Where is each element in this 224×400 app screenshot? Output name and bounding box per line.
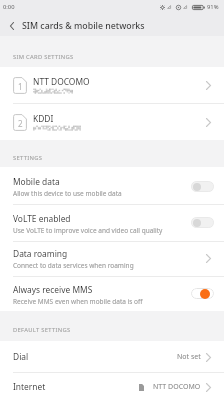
button[interactable]: Internet (0, 373, 224, 400)
staticText: 2 (18, 118, 23, 129)
staticText: Receive MMS even when mobile data is off (13, 297, 143, 306)
button[interactable]: Mobile data (0, 167, 224, 204)
staticText: Data roaming (13, 248, 68, 259)
button[interactable]: 1 (0, 67, 224, 103)
staticText: Mobile data (13, 176, 60, 187)
button[interactable]: Dial (0, 341, 224, 372)
staticText: VoLTE enabled (13, 213, 71, 224)
staticText: SIM CARD SETTINGS (13, 53, 74, 61)
staticText: Use VoLTE to improve voice and video cal… (13, 226, 163, 235)
staticText: DEFAULT SETTINGS (13, 326, 71, 334)
button[interactable]: Always receive MMS (0, 277, 224, 311)
button[interactable]: Switch on (191, 288, 214, 299)
staticText: Internet (13, 381, 46, 392)
staticText: SETTINGS (13, 154, 43, 162)
staticText: NTT DOCOMO (153, 382, 201, 392)
button[interactable]: VoLTE enabled (0, 205, 224, 241)
button[interactable]: Switch off (191, 181, 214, 192)
staticText: Not set (177, 352, 201, 362)
staticText: NTT DOCOMO (33, 76, 90, 87)
staticText: 1 (18, 81, 23, 92)
staticText: Always receive MMS (13, 284, 93, 295)
staticText: SIM cards & mobile networks (22, 20, 145, 32)
staticText: Dial (13, 351, 29, 362)
staticText: Connect to data services when roaming (13, 261, 134, 270)
staticText: KDDI (33, 113, 54, 124)
button[interactable]: Switch off (191, 217, 214, 228)
staticText: 0:00 (3, 3, 15, 11)
button[interactable]: Data roaming (0, 242, 224, 276)
button[interactable]: 2 (0, 104, 224, 140)
staticText: 91% (207, 3, 219, 11)
button[interactable]: Back (0, 13, 24, 36)
staticText: Allow this device to use mobile data (13, 189, 122, 198)
